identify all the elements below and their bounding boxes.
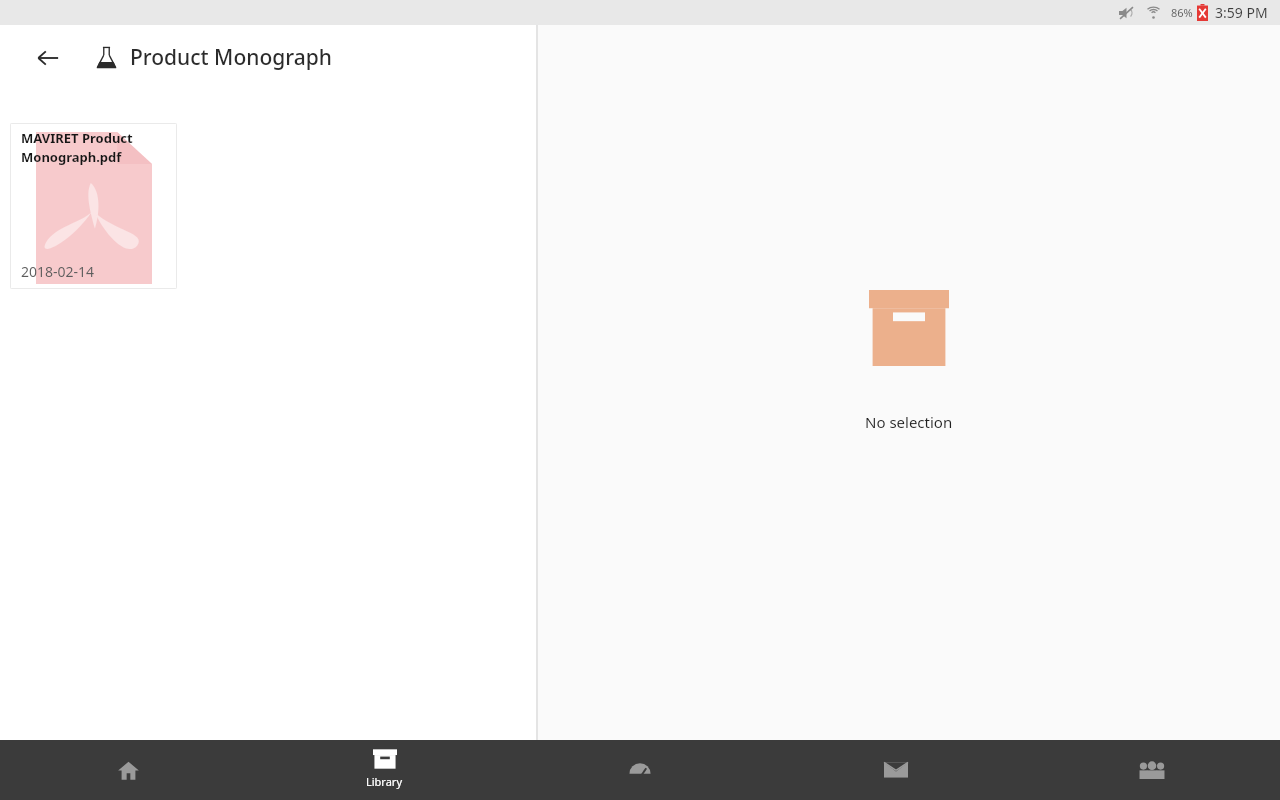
button[interactable]: MAVIRET Product Monograph.pdf xyxy=(10,123,177,289)
staticText: 86% xyxy=(1171,5,1193,20)
button[interactable]: Contacts xyxy=(1024,740,1280,800)
staticText: 2018-02-14 xyxy=(21,262,95,281)
button[interactable]: Library xyxy=(256,740,512,800)
button[interactable]: Dashboard xyxy=(512,740,768,800)
button[interactable]: Mail xyxy=(768,740,1024,800)
staticText: Library xyxy=(366,774,403,789)
staticText: MAVIRET Product Monograph.pdf xyxy=(21,129,133,166)
button[interactable]: Home xyxy=(0,740,256,800)
staticText: No selection xyxy=(865,412,953,432)
staticText: Product Monograph xyxy=(130,43,332,72)
staticText: 3:59 PM xyxy=(1215,3,1268,22)
button[interactable]: Back xyxy=(28,38,68,78)
